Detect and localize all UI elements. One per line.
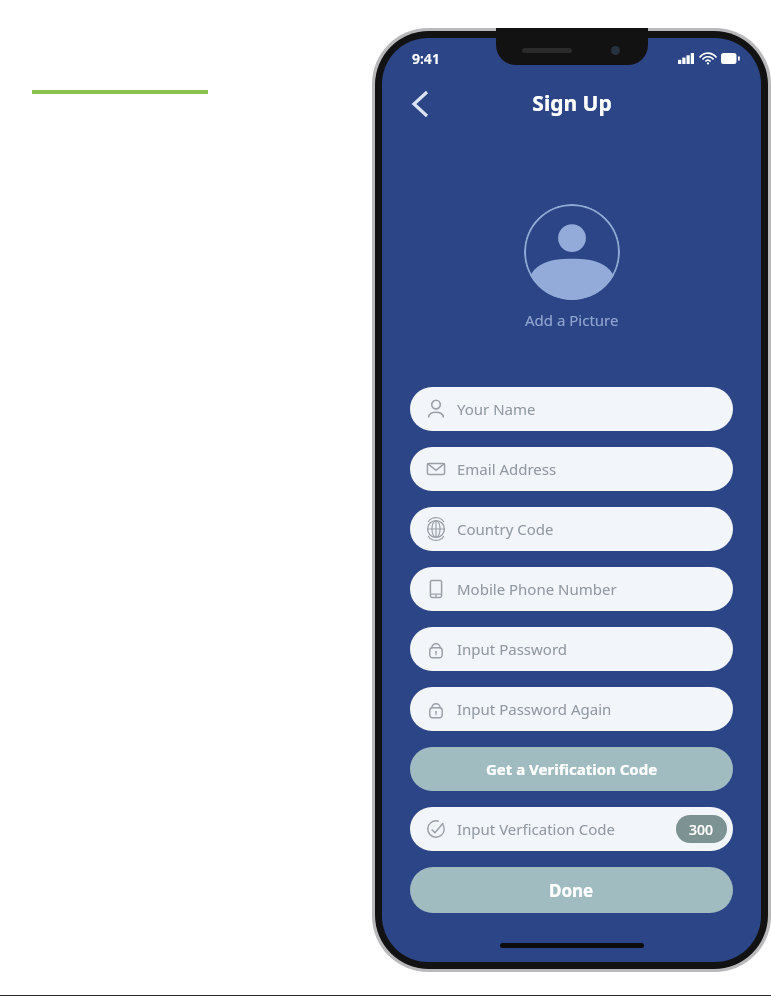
button[interactable]: Email Address bbox=[410, 447, 733, 491]
button[interactable]: Input Verfication Code bbox=[410, 807, 733, 851]
staticText: Mobile Phone Number bbox=[457, 579, 617, 599]
button[interactable]: Input Password bbox=[410, 627, 733, 671]
button[interactable]: Add a Picture bbox=[524, 204, 620, 300]
button[interactable]: Done bbox=[410, 867, 733, 913]
staticText: Get a Verification Code bbox=[486, 759, 658, 779]
staticText: Email Address bbox=[457, 459, 557, 479]
button[interactable]: Input Password Again bbox=[410, 687, 733, 731]
button[interactable]: Get a Verification Code bbox=[410, 747, 733, 791]
staticText: Your Name bbox=[457, 399, 536, 419]
staticText: Add a Picture bbox=[525, 310, 619, 330]
button[interactable]: Back bbox=[398, 82, 442, 126]
button[interactable]: Your Name bbox=[410, 387, 733, 431]
staticText: Input Password bbox=[457, 639, 568, 659]
staticText: 9:41 bbox=[412, 49, 440, 68]
button[interactable]: Country Code bbox=[410, 507, 733, 551]
button[interactable]: Mobile Phone Number bbox=[410, 567, 733, 611]
staticText: Done bbox=[549, 879, 594, 902]
staticText: 300 bbox=[689, 820, 714, 839]
staticText: Sign Up bbox=[532, 89, 612, 118]
staticText: Country Code bbox=[457, 519, 554, 539]
staticText: Input Password Again bbox=[457, 699, 612, 719]
staticText: Input Verfication Code bbox=[457, 819, 615, 839]
